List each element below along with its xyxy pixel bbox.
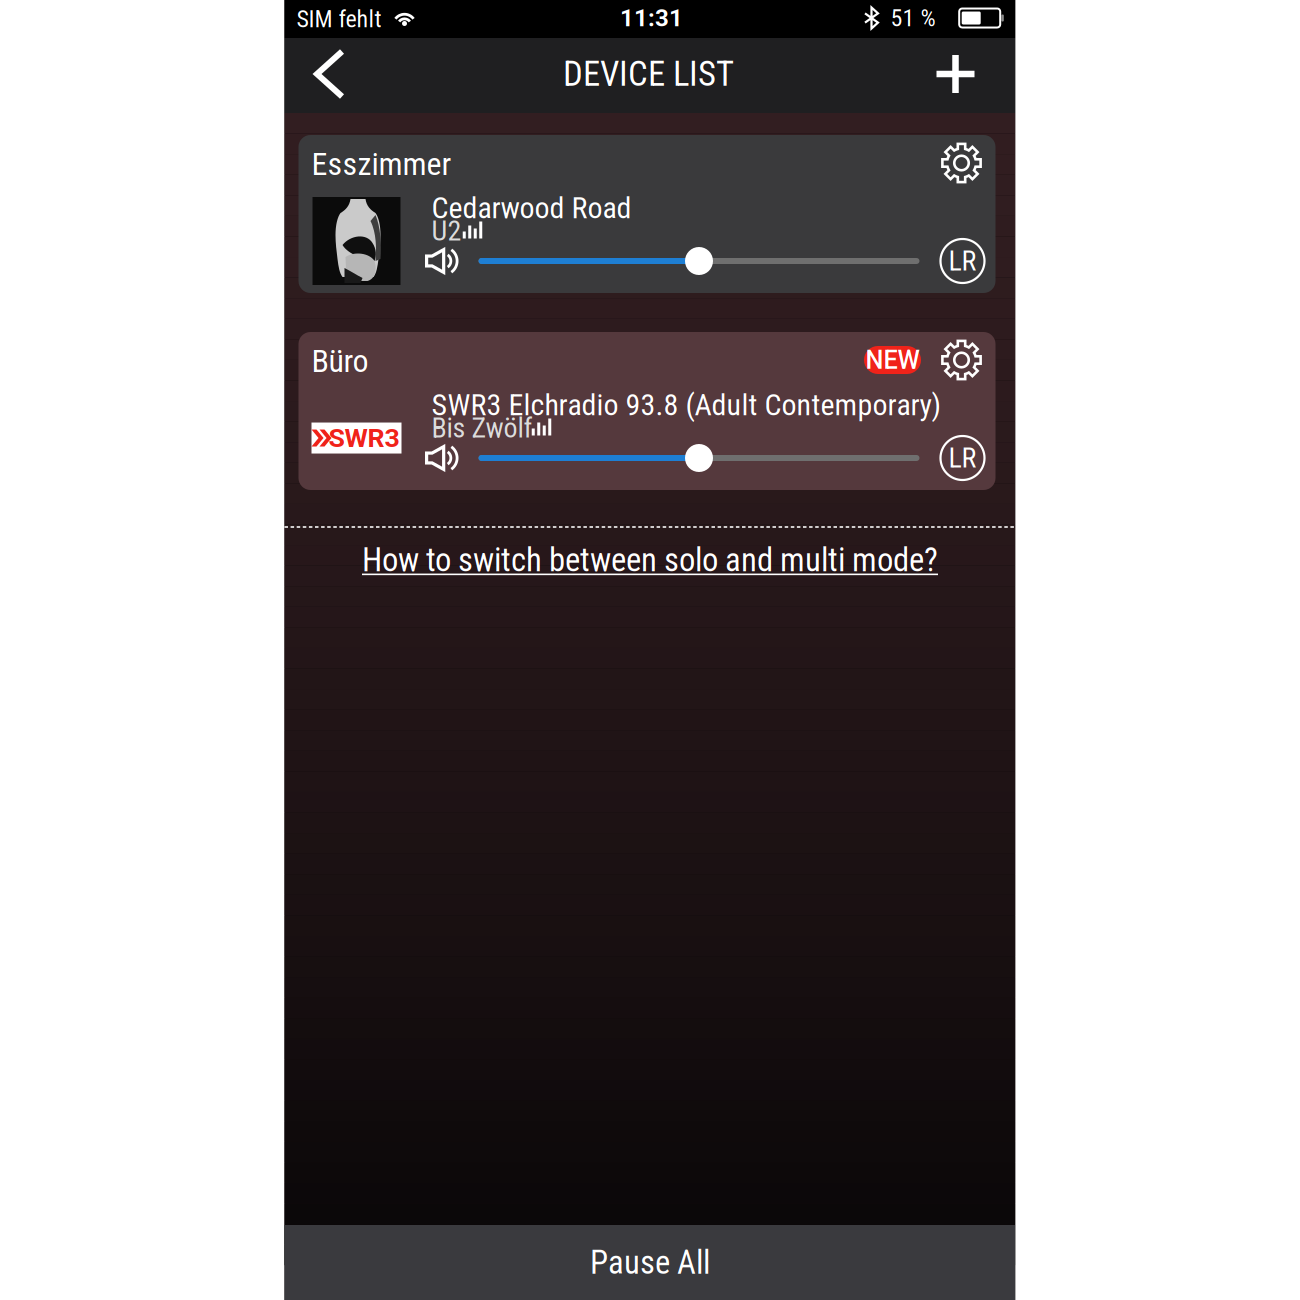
button[interactable]: Left and right channel [936, 432, 988, 484]
button[interactable]: Esszimmer [298, 135, 995, 293]
staticText: 11:31 [620, 4, 683, 32]
staticText: U2 [431, 215, 461, 247]
button[interactable]: Büro [298, 332, 995, 490]
staticText: Bis Zwölf [431, 412, 532, 444]
button[interactable]: How to switch between solo and multi mod… [295, 538, 1005, 582]
button[interactable]: Pause All [284, 1225, 1015, 1300]
staticText: Cedarwood Road [431, 190, 631, 226]
staticText: SIM fehlt [296, 5, 381, 33]
staticText: How to switch between solo and multi mod… [362, 541, 938, 579]
button[interactable]: Back [298, 39, 360, 109]
staticText: Esszimmer [311, 145, 451, 183]
button[interactable]: Settings [935, 137, 987, 189]
button[interactable]: Settings [935, 334, 987, 386]
staticText: LR [948, 442, 976, 474]
staticText: Büro [311, 342, 368, 380]
staticText: NEW [865, 345, 919, 375]
button[interactable]: Left and right channel [936, 235, 988, 287]
staticText: SWR3 Elchradio 93.8 (Adult Contemporary) [431, 387, 941, 423]
staticText: SWR3 [328, 422, 399, 454]
button[interactable]: Add device [924, 39, 986, 109]
staticText: 51 % [890, 4, 935, 32]
staticText: Pause All [590, 1243, 710, 1282]
staticText: LR [948, 245, 976, 277]
staticText: DEVICE LIST [563, 54, 734, 94]
